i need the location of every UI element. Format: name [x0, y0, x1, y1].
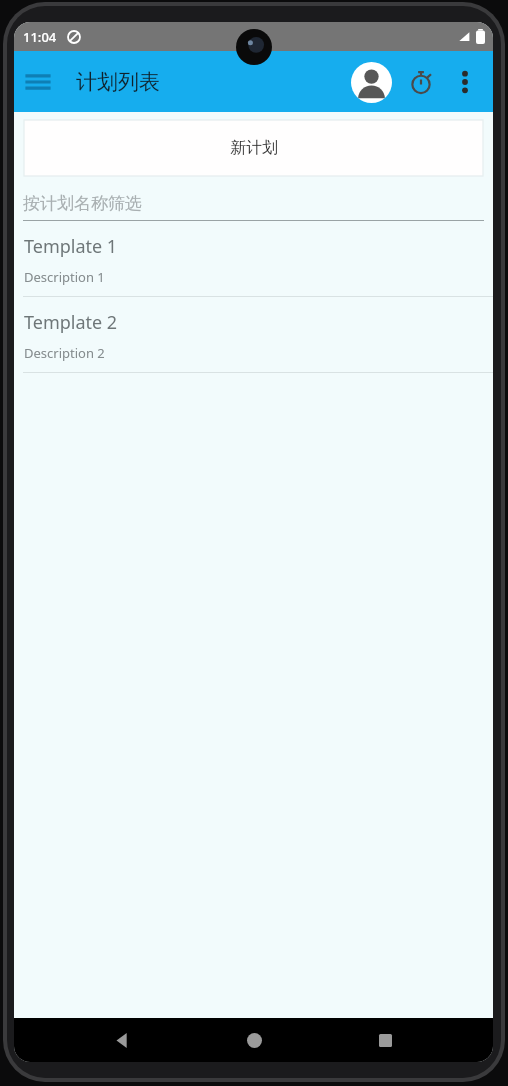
button[interactable]: More options — [443, 60, 487, 104]
staticText: 新计划 — [230, 138, 278, 158]
staticText: 按计划名称筛选 — [23, 193, 142, 214]
staticText: Template 1 — [24, 234, 118, 259]
button[interactable]: Open navigation menu — [14, 58, 62, 106]
button[interactable]: Timer — [399, 60, 443, 104]
button[interactable]: Template 1 — [14, 221, 493, 296]
staticText: Description 2 — [24, 344, 105, 362]
button[interactable]: 按计划名称筛选 — [23, 186, 484, 221]
button[interactable]: Template 2 — [14, 297, 493, 372]
button[interactable]: Recent apps — [361, 1018, 409, 1062]
button[interactable]: Back — [98, 1018, 146, 1062]
button[interactable]: Account — [346, 57, 396, 107]
staticText: 计划列表 — [76, 69, 160, 95]
staticText: Template 2 — [24, 310, 118, 335]
button[interactable]: 新计划 — [24, 120, 483, 176]
staticText: Description 1 — [24, 268, 105, 286]
staticText: 11:04 — [23, 28, 57, 46]
button[interactable]: Home — [230, 1018, 278, 1062]
